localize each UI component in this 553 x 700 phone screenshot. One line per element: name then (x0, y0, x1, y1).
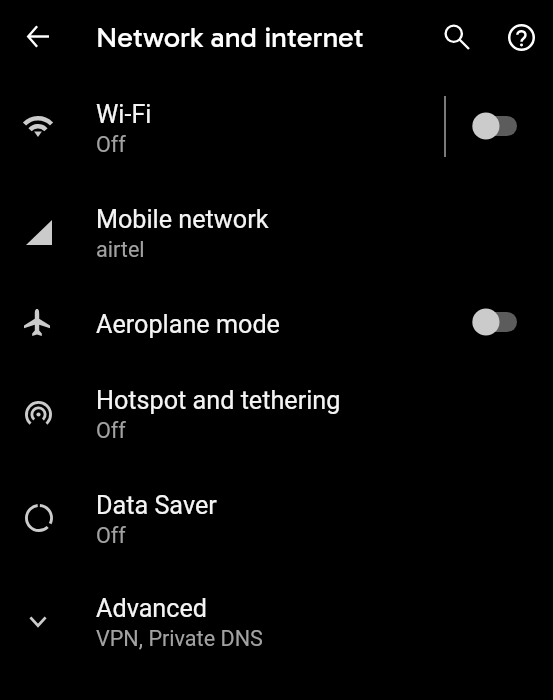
button[interactable]: Mobile network (0, 178, 553, 282)
staticText: Off (96, 132, 126, 157)
button[interactable]: Data Saver (0, 464, 553, 568)
button[interactable]: Toggle (462, 98, 536, 154)
button[interactable]: Aeroplane mode (0, 282, 553, 360)
button[interactable]: Search (432, 12, 481, 61)
staticText: Off (96, 523, 126, 548)
staticText: Hotspot and tethering (96, 386, 341, 416)
staticText: Advanced (96, 594, 208, 624)
staticText: Off (96, 418, 126, 443)
staticText: Wi-Fi (96, 100, 152, 130)
staticText: Network and internet (96, 20, 364, 55)
staticText: Data Saver (96, 491, 217, 521)
staticText: airtel (96, 237, 145, 262)
staticText: Mobile network (96, 205, 269, 235)
button[interactable]: Back (12, 12, 61, 61)
staticText: Aeroplane mode (96, 310, 280, 340)
button[interactable]: Advanced (0, 568, 553, 672)
button[interactable]: Help (497, 12, 546, 61)
button[interactable]: Wi-Fi (0, 74, 553, 178)
button[interactable]: Hotspot and tethering (0, 360, 553, 464)
staticText: VPN, Private DNS (96, 626, 263, 651)
button[interactable]: Toggle (462, 294, 536, 350)
